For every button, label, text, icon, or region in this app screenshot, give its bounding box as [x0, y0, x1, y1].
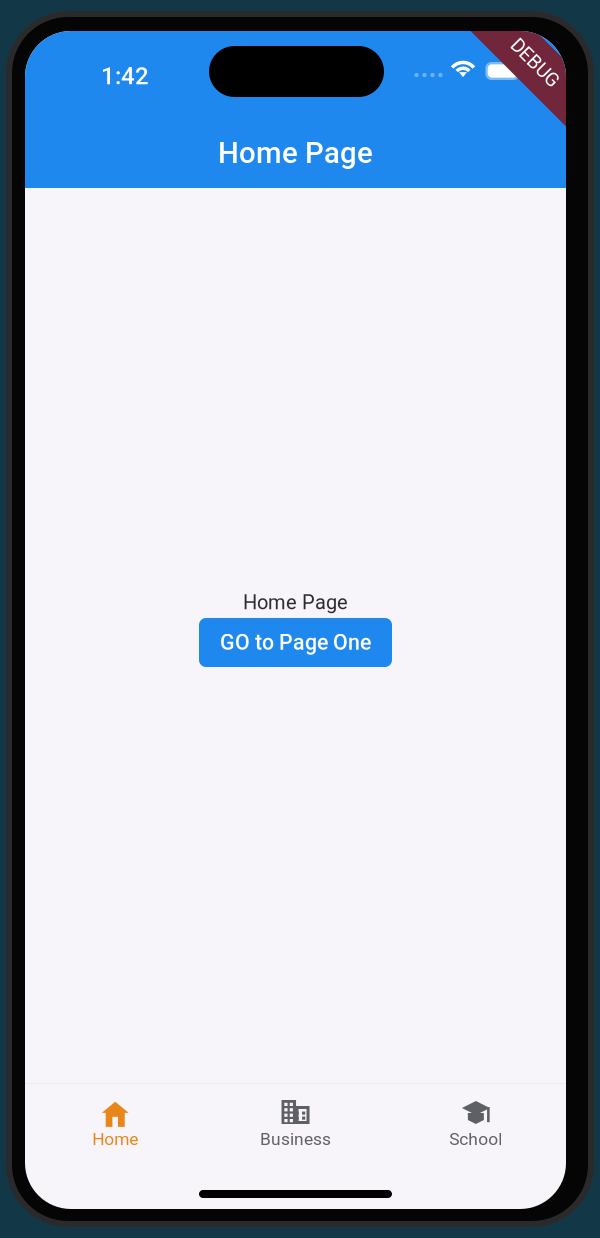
- staticText: Home: [92, 1129, 138, 1149]
- staticText: Home Page: [243, 591, 348, 614]
- staticText: GO to Page One: [220, 630, 371, 655]
- staticText: 1:42: [101, 62, 149, 90]
- button[interactable]: GO to Page One: [199, 618, 392, 667]
- button[interactable]: School: [386, 1084, 566, 1178]
- button[interactable]: Business: [205, 1084, 386, 1178]
- staticText: Home Page: [218, 136, 373, 170]
- staticText: School: [449, 1129, 502, 1149]
- button[interactable]: Home: [25, 1084, 205, 1178]
- staticText: DEBUG: [505, 52, 565, 74]
- staticText: Business: [260, 1129, 331, 1149]
